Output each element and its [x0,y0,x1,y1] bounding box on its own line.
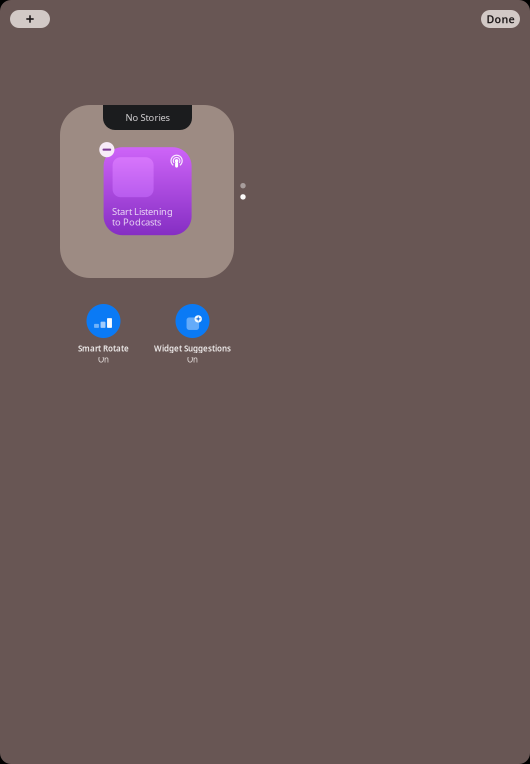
staticText: On [187,354,198,365]
staticText: No Stories [125,111,169,124]
staticText: Smart Rotate [78,343,129,354]
staticText: to Podcasts [112,216,161,228]
button[interactable]: Remove widget [99,142,115,157]
staticText: Start Listening [112,205,173,218]
staticText: Widget Suggestions [154,343,231,354]
button[interactable]: Done [481,10,520,28]
staticText: On [98,354,109,365]
staticText: Done [486,12,514,26]
button[interactable]: Smart Rotate [59,304,148,365]
button[interactable]: Widget Suggestions [148,304,237,365]
button[interactable]: Add widget [10,10,50,28]
